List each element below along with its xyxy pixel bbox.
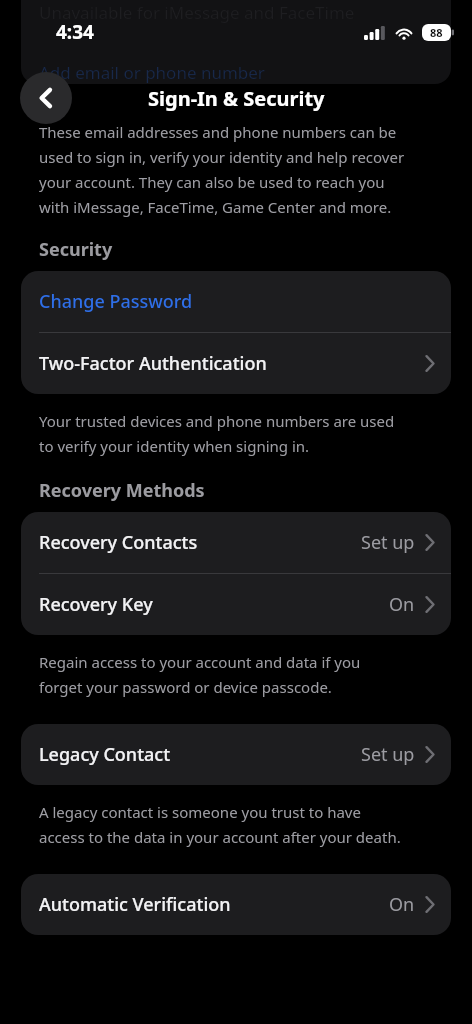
staticText: Sign-In & Security [148, 85, 325, 112]
staticText: Recovery Contacts [39, 530, 198, 555]
staticText: Recovery Key [39, 592, 153, 617]
staticText: Two-Factor Authentication [39, 351, 267, 376]
staticText: A legacy contact is someone you trust to… [39, 802, 401, 847]
staticText: On [389, 892, 415, 917]
button[interactable]: Automatic Verification [21, 874, 451, 935]
staticText: Recovery Methods [39, 478, 205, 503]
button[interactable]: Recovery Contacts [21, 512, 451, 573]
staticText: Security [39, 237, 113, 262]
staticText: 4:34 [56, 19, 94, 45]
staticText: Automatic Verification [39, 892, 231, 917]
staticText: Regain access to your account and data i… [39, 652, 361, 697]
staticText: On [389, 592, 415, 617]
staticText: These email addresses and phone numbers … [39, 122, 405, 217]
button[interactable]: Two-Factor Authentication [21, 333, 451, 394]
staticText: Legacy Contact [39, 742, 171, 767]
staticText: Set up [361, 742, 415, 767]
button[interactable]: Change Password [21, 271, 451, 332]
staticText: 88 [430, 25, 443, 40]
staticText: Your trusted devices and phone numbers a… [39, 411, 395, 456]
button[interactable]: Legacy Contact [21, 724, 451, 785]
button[interactable]: Back [20, 72, 72, 124]
staticText: Add email or phone number [39, 61, 265, 84]
staticText: Unavailable for iMessage and FaceTime [39, 1, 355, 24]
staticText: Set up [361, 530, 415, 555]
button[interactable]: Recovery Key [21, 574, 451, 635]
staticText: Change Password [39, 289, 193, 314]
